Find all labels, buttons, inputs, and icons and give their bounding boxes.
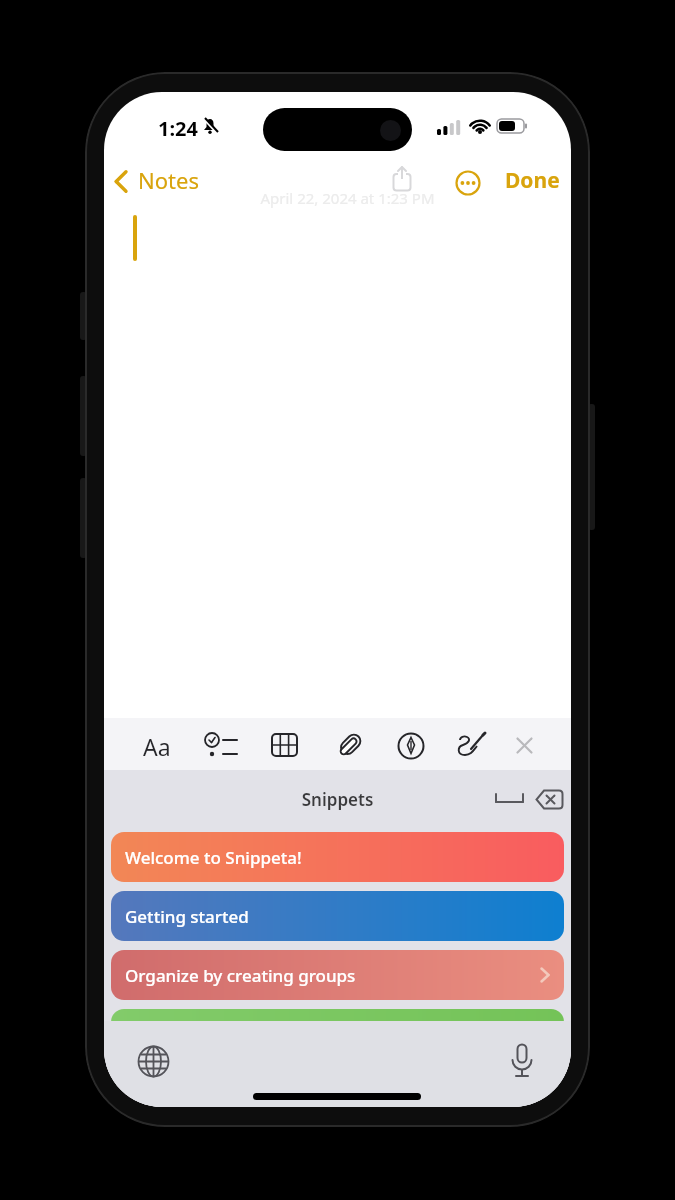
button[interactable]: Done [505, 166, 560, 195]
button[interactable] [337, 731, 363, 759]
button[interactable] [111, 1009, 564, 1059]
staticText: Getting started [125, 905, 249, 928]
staticText: 1:24 [158, 115, 198, 142]
button[interactable] [535, 789, 564, 810]
button[interactable] [204, 732, 238, 760]
button[interactable]: Getting started [111, 891, 564, 941]
button[interactable] [508, 1043, 536, 1081]
staticText: Snippets [104, 788, 571, 811]
button[interactable]: Welcome to Snippeta! [111, 832, 564, 882]
button[interactable] [137, 1045, 170, 1078]
staticText: Organize by creating groups [125, 964, 356, 987]
staticText: April 22, 2024 at 1:23 PM [114, 188, 571, 208]
button[interactable] [397, 732, 425, 760]
button[interactable] [392, 166, 412, 192]
button[interactable]: Notes [138, 165, 199, 195]
button[interactable]: Aa [143, 731, 171, 762]
button[interactable]: Organize by creating groups [111, 950, 564, 1000]
button[interactable] [455, 170, 481, 196]
button[interactable] [455, 731, 487, 760]
button[interactable] [516, 737, 533, 754]
button[interactable] [271, 733, 298, 757]
staticText: Welcome to Snippeta! [125, 846, 302, 869]
button[interactable] [495, 793, 524, 805]
